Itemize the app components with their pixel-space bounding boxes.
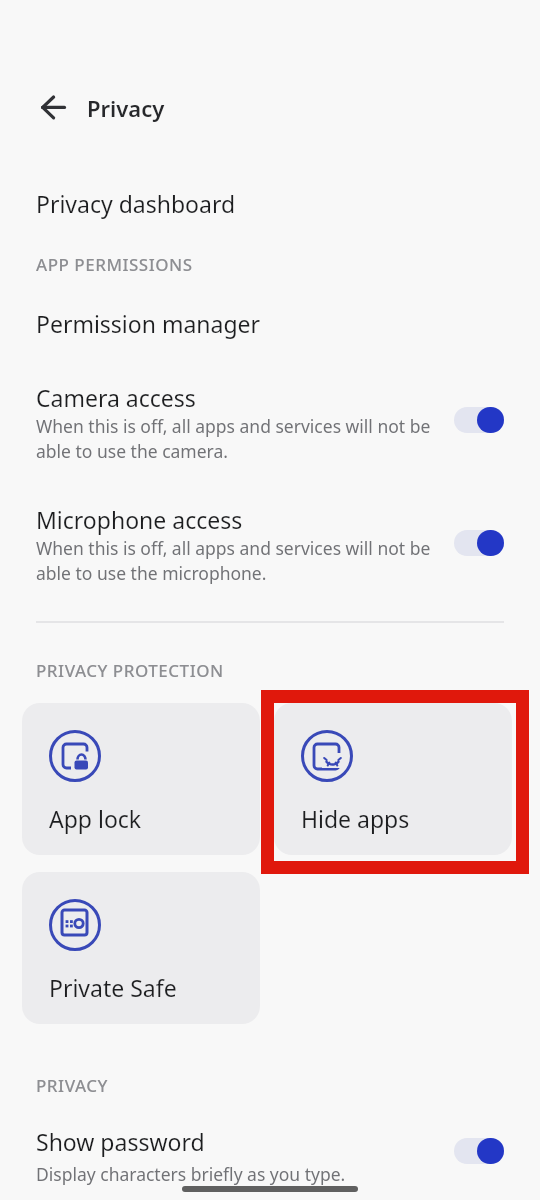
- staticText: App lock: [49, 803, 142, 834]
- staticText: Permission manager: [36, 308, 261, 339]
- staticText: Show password: [36, 1126, 205, 1157]
- staticText: Hide apps: [301, 803, 410, 834]
- button[interactable]: [0, 372, 540, 462]
- button[interactable]: Hide apps: [274, 703, 512, 855]
- button[interactable]: Private Safe: [22, 872, 260, 1024]
- staticText: When this is off, all apps and services …: [36, 536, 431, 586]
- staticText: Camera access: [36, 382, 196, 413]
- staticText: Microphone access: [36, 504, 243, 535]
- staticText: Privacy: [87, 93, 165, 123]
- button[interactable]: [28, 86, 72, 130]
- button[interactable]: [0, 178, 540, 226]
- staticText: Privacy dashboard: [36, 188, 236, 219]
- staticText: PRIVACY: [36, 1074, 108, 1097]
- button[interactable]: [454, 407, 504, 433]
- button[interactable]: [0, 1118, 540, 1188]
- button[interactable]: [0, 494, 540, 584]
- staticText: Display characters briefly as you type.: [36, 1162, 346, 1186]
- staticText: APP PERMISSIONS: [36, 253, 193, 276]
- staticText: When this is off, all apps and services …: [36, 414, 431, 464]
- button[interactable]: [0, 298, 540, 346]
- staticText: Private Safe: [49, 972, 177, 1003]
- staticText: PRIVACY PROTECTION: [36, 659, 224, 682]
- button[interactable]: [454, 530, 504, 556]
- button[interactable]: [454, 1138, 504, 1164]
- button[interactable]: App lock: [22, 703, 260, 855]
